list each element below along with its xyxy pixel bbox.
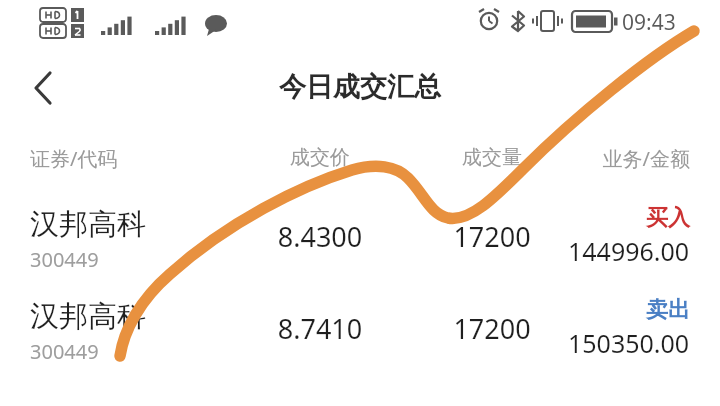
staticText: 150350.00 [568, 326, 690, 360]
staticText: 09:43 [622, 8, 676, 37]
staticText: 17200 [422, 310, 562, 347]
staticText: 300449 [30, 246, 99, 273]
staticText: 8.7410 [250, 310, 390, 347]
staticText: 卖出 [646, 296, 690, 324]
button[interactable]: 汉邦高科 [0, 292, 720, 382]
button[interactable]: 汉邦高科 [0, 200, 720, 290]
staticText: 证券/代码 [30, 145, 118, 172]
staticText: 成交量 [447, 145, 537, 170]
staticText: 今日成交汇总 [279, 70, 441, 104]
staticText: 8.4300 [250, 218, 390, 255]
staticText: 汉邦高科 [30, 206, 146, 243]
staticText: 汉邦高科 [30, 298, 146, 335]
staticText: 144996.00 [568, 234, 690, 268]
staticText: 业务/金额 [530, 145, 690, 172]
staticText: 成交价 [275, 145, 365, 170]
button[interactable]: Back [12, 58, 70, 116]
staticText: 买入 [646, 204, 690, 232]
staticText: 17200 [422, 218, 562, 255]
staticText: 300449 [30, 338, 99, 365]
